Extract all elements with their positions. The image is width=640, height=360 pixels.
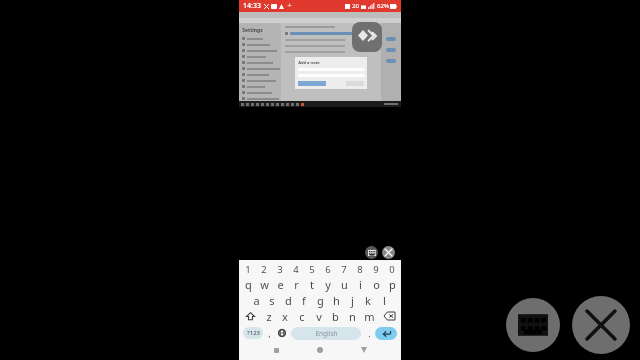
button[interactable]: ?123 <box>243 327 263 339</box>
staticText: 1 <box>245 263 251 276</box>
staticText: . <box>368 327 371 339</box>
button[interactable]: u <box>336 276 352 292</box>
staticText: k <box>365 293 371 308</box>
button[interactable]: . <box>363 324 375 342</box>
staticText: 0 <box>389 263 395 276</box>
button[interactable]: i <box>352 276 368 292</box>
staticText: 6 <box>325 263 331 276</box>
staticText: p <box>389 277 396 292</box>
button[interactable]: Change language <box>275 324 289 342</box>
button[interactable]: l <box>376 292 392 308</box>
button[interactable]: , <box>263 324 275 342</box>
button[interactable]: Home <box>312 342 328 358</box>
button[interactable]: r <box>288 276 304 292</box>
staticText: n <box>349 309 356 324</box>
staticText: l <box>383 293 386 308</box>
button[interactable]: Enter <box>375 327 397 340</box>
button[interactable]: o <box>368 276 384 292</box>
staticText: b <box>332 309 339 324</box>
staticText: 8 <box>357 263 363 276</box>
staticText: 4 <box>293 263 299 276</box>
staticText: Settings <box>242 27 263 34</box>
button[interactable]: 7 <box>336 262 352 276</box>
button[interactable]: x <box>277 308 293 324</box>
button[interactable]: 0 <box>384 262 400 276</box>
button[interactable]: 3 <box>272 262 288 276</box>
button[interactable]: m <box>361 308 378 324</box>
other: AnyDesk <box>352 22 382 52</box>
staticText: i <box>359 277 362 292</box>
staticText: a <box>253 293 260 308</box>
button[interactable]: j <box>344 292 360 308</box>
button[interactable]: s <box>264 292 280 308</box>
button[interactable]: English <box>291 327 361 340</box>
button[interactable]: q <box>240 276 256 292</box>
button[interactable]: y <box>320 276 336 292</box>
staticText: 7 <box>341 263 347 276</box>
staticText: z <box>266 309 272 324</box>
staticText: ?123 <box>247 329 260 337</box>
staticText: , <box>268 327 271 339</box>
staticText: Add a note <box>298 60 320 65</box>
button[interactable]: g <box>312 292 328 308</box>
button[interactable]: Back <box>356 342 372 358</box>
button[interactable]: d <box>280 292 296 308</box>
staticText: e <box>277 277 284 292</box>
button[interactable]: 6 <box>320 262 336 276</box>
staticText: 9 <box>373 263 379 276</box>
staticText: m <box>364 309 375 324</box>
staticText: 20 <box>352 2 359 10</box>
button[interactable]: p <box>384 276 400 292</box>
button[interactable]: 9 <box>368 262 384 276</box>
staticText: English <box>315 329 338 338</box>
button[interactable]: 4 <box>288 262 304 276</box>
button[interactable]: 5 <box>304 262 320 276</box>
staticText: f <box>302 293 306 308</box>
staticText: r <box>294 277 299 292</box>
button[interactable]: 8 <box>352 262 368 276</box>
button[interactable]: w <box>256 276 272 292</box>
staticText: s <box>269 293 275 308</box>
button[interactable]: 2 <box>256 262 272 276</box>
button[interactable]: v <box>310 308 327 324</box>
staticText: + <box>287 1 292 11</box>
button[interactable]: c <box>293 308 310 324</box>
staticText: t <box>310 277 314 292</box>
staticText: j <box>351 293 354 308</box>
button[interactable]: Close <box>382 246 395 259</box>
button[interactable]: t <box>304 276 320 292</box>
button[interactable]: e <box>272 276 288 292</box>
button[interactable]: n <box>344 308 361 324</box>
staticText: 14:33 <box>243 1 261 11</box>
button[interactable]: a <box>248 292 264 308</box>
staticText: 5 <box>309 263 315 276</box>
button[interactable]: Close <box>572 296 630 354</box>
staticText: o <box>373 277 380 292</box>
button[interactable]: Shift <box>240 308 261 324</box>
staticText: 2 <box>261 263 267 276</box>
button[interactable]: z <box>261 308 277 324</box>
button[interactable]: Toggle keyboard <box>365 246 378 259</box>
button[interactable]: h <box>328 292 344 308</box>
staticText: x <box>282 309 288 324</box>
staticText: u <box>341 277 348 292</box>
staticText: q <box>245 277 252 292</box>
staticText: 3 <box>277 263 283 276</box>
staticText: h <box>333 293 340 308</box>
staticText: c <box>299 309 305 324</box>
staticText: 62% <box>377 2 389 10</box>
staticText: v <box>316 309 322 324</box>
staticText: g <box>317 293 324 308</box>
staticText: y <box>325 277 331 292</box>
button[interactable]: Backspace <box>378 308 400 324</box>
staticText: w <box>260 277 269 292</box>
button[interactable]: b <box>327 308 344 324</box>
button[interactable]: Recents <box>268 342 284 358</box>
button[interactable]: f <box>296 292 312 308</box>
button[interactable]: 1 <box>240 262 256 276</box>
button[interactable]: k <box>360 292 376 308</box>
button[interactable]: Show keyboard <box>506 298 560 352</box>
staticText: d <box>285 293 292 308</box>
